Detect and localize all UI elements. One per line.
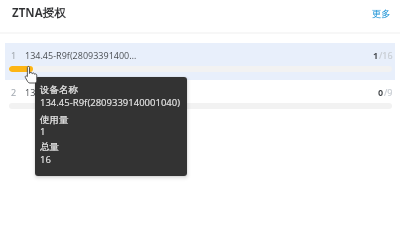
staticText: 总量 <box>40 141 59 153</box>
staticText: 2 <box>11 86 17 98</box>
staticText: 1 <box>11 49 17 61</box>
staticText: 1 <box>40 125 46 138</box>
staticText: 0 <box>378 86 384 98</box>
button[interactable]: 2 <box>5 80 395 117</box>
button[interactable]: 更多 <box>366 2 397 26</box>
staticText: ZTNA授权 <box>12 5 66 21</box>
staticText: 134.45-R9f(2809339140001040) <box>40 96 181 109</box>
other: Pointer <box>24 65 38 85</box>
staticText: 更多 <box>372 8 391 20</box>
button[interactable]: 1 <box>5 43 395 80</box>
staticText: 16 <box>40 153 51 166</box>
staticText: 使用量 <box>40 114 69 126</box>
staticText: /9 <box>384 86 393 98</box>
staticText: 设备名称 <box>40 84 78 96</box>
staticText: 1 <box>373 49 379 61</box>
staticText: /16 <box>379 49 393 61</box>
staticText: 134.45-R9f(2809339140001041) <box>25 86 141 98</box>
staticText: 134.45-R9f(2809339140001040) <box>25 49 141 61</box>
